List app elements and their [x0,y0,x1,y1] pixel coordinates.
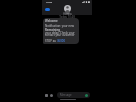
button[interactable]: Send [84,93,89,98]
button[interactable]: Message [57,92,90,98]
button[interactable]: Welcome [43,18,79,44]
button[interactable]: Back [44,6,51,12]
staticText: 36000 [57,39,65,43]
button[interactable]: Gallery [49,93,54,98]
button[interactable]: Camera [44,93,49,98]
staticText: Message [60,93,72,97]
staticText: 10:52 [46,0,53,3]
staticText: Hanna [63,12,72,16]
staticText: Notification: your new order is ready [45,24,79,28]
staticText: your delay. Check your details and [45,31,79,35]
staticText: contact your customer [45,33,75,37]
staticText: Remaining [45,28,60,32]
staticText: Today 10:48 [42,15,92,19]
staticText: STOP au [45,39,57,43]
staticText: Welcome [45,19,58,23]
